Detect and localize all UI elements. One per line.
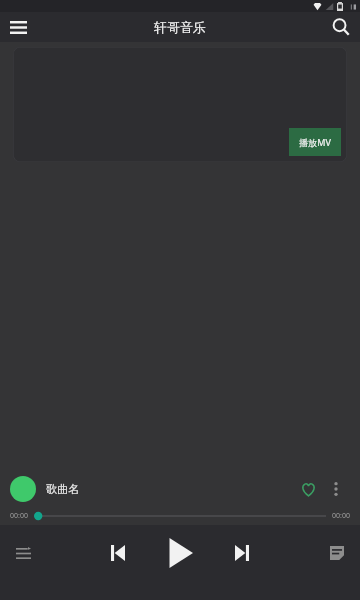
button[interactable]: Previous xyxy=(96,531,140,575)
staticText: 歌曲名 xyxy=(46,482,294,496)
button[interactable]: More options xyxy=(322,475,350,503)
button[interactable]: 播放MV xyxy=(289,128,341,156)
button[interactable]: Play queue xyxy=(0,531,46,575)
staticText: 轩哥音乐 xyxy=(154,19,206,35)
button[interactable]: Album art xyxy=(10,476,36,502)
button[interactable]: Menu xyxy=(0,12,36,42)
button[interactable]: Lyrics xyxy=(314,531,360,575)
button[interactable]: Favorite xyxy=(294,475,322,503)
button[interactable]: Play xyxy=(154,527,206,579)
staticText: 播放MV xyxy=(299,136,331,148)
button[interactable]: Next xyxy=(220,531,264,575)
button[interactable]: Seek bar xyxy=(34,509,326,523)
button[interactable]: Search xyxy=(322,12,360,42)
staticText: 00:00 xyxy=(332,511,350,521)
staticText: 00:00 xyxy=(10,511,28,521)
